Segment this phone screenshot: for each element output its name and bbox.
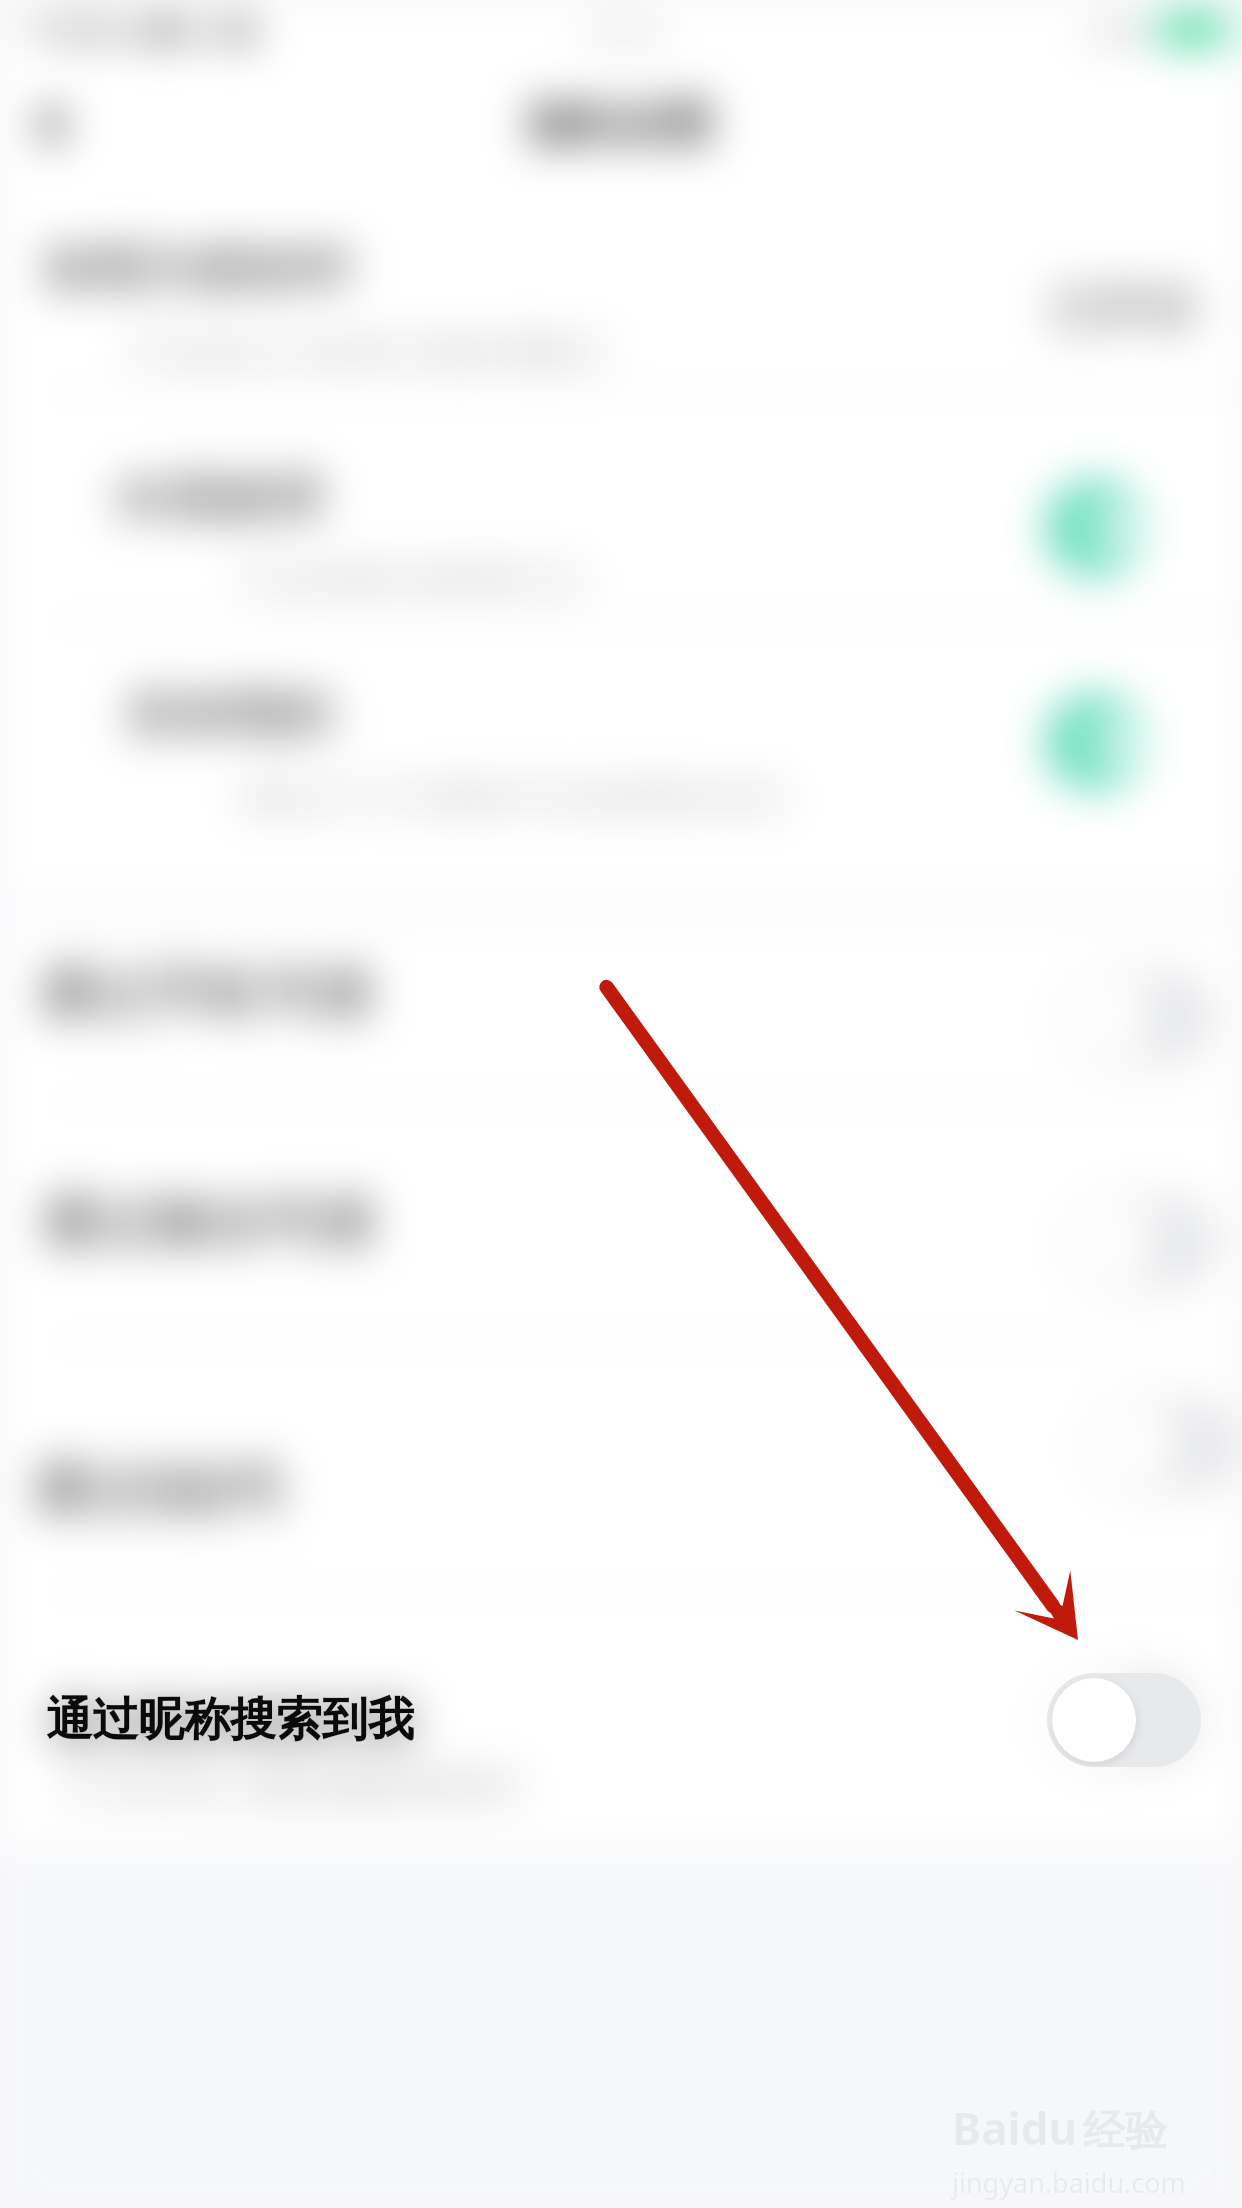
button[interactable]: Switch, on <box>1046 694 1142 790</box>
staticText: 中国移动 <box>26 12 146 50</box>
button[interactable]: 通过昵称搜索到我 <box>0 1600 1242 1840</box>
other: Annotation arrow <box>0 0 1242 2208</box>
staticText: 通过昵称搜索到我 <box>47 1694 415 1752</box>
button[interactable]: 添加我的 <box>0 645 1242 840</box>
button[interactable]: Switch, on <box>1046 480 1142 576</box>
staticText: 向我推荐 <box>118 466 326 532</box>
staticText: jingyan.baidu.com <box>952 2164 1186 2201</box>
staticText: 通过手机号搜 <box>38 958 374 1029</box>
button[interactable]: Back <box>30 103 74 147</box>
staticText: 隐私设置 <box>529 96 713 154</box>
button[interactable]: 通过微信号搜 <box>0 1150 1242 1290</box>
button[interactable]: Switch, off <box>1047 1672 1201 1766</box>
staticText: Baidu <box>952 2098 1078 2158</box>
button[interactable]: 加我为朋友时 <box>0 210 1242 370</box>
button[interactable]: Switch, off <box>1047 1673 1201 1767</box>
staticText: 通过微信号搜 <box>40 1187 376 1258</box>
button[interactable]: 通过手机号搜 <box>0 918 1242 1053</box>
staticText: 84% <box>1092 11 1148 49</box>
staticText: 不允许别人通过昵称找到你 <box>64 1762 520 1810</box>
button[interactable]: Switch, off <box>1062 970 1216 1064</box>
staticText: 通过昵称搜索到我 <box>46 1691 414 1749</box>
button[interactable]: Switch, off <box>1088 1398 1242 1492</box>
staticText: 通过QQ号 <box>32 1448 288 1524</box>
button[interactable]: 通过QQ号 <box>0 1400 1242 1560</box>
staticText: 已开启 <box>1051 278 1195 338</box>
button[interactable]: 通过昵称搜索到我 <box>0 1650 1242 1820</box>
staticText: 经验 <box>1083 2105 1167 2158</box>
button[interactable]: Switch, off <box>1066 1195 1220 1289</box>
button[interactable]: 向我推荐 <box>0 430 1242 610</box>
staticText: 添加我的 <box>126 681 334 747</box>
staticText: 加我为朋友时 <box>42 236 354 302</box>
